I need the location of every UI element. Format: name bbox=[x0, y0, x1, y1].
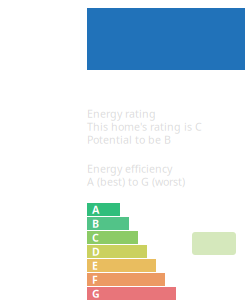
staticText: G bbox=[92, 286, 100, 300]
staticText: Energy efficiency bbox=[87, 161, 172, 176]
staticText: D bbox=[92, 244, 100, 259]
staticText: B bbox=[92, 216, 99, 231]
staticText: This home's rating is C bbox=[87, 119, 202, 134]
staticText: F bbox=[92, 272, 98, 287]
staticText: A (best) to G (worst) bbox=[87, 174, 185, 189]
staticText: A bbox=[92, 202, 99, 217]
staticText: E bbox=[92, 258, 98, 273]
staticText: Energy rating bbox=[87, 106, 156, 121]
staticText: Potential to be B bbox=[87, 132, 171, 147]
staticText: C bbox=[92, 230, 99, 245]
